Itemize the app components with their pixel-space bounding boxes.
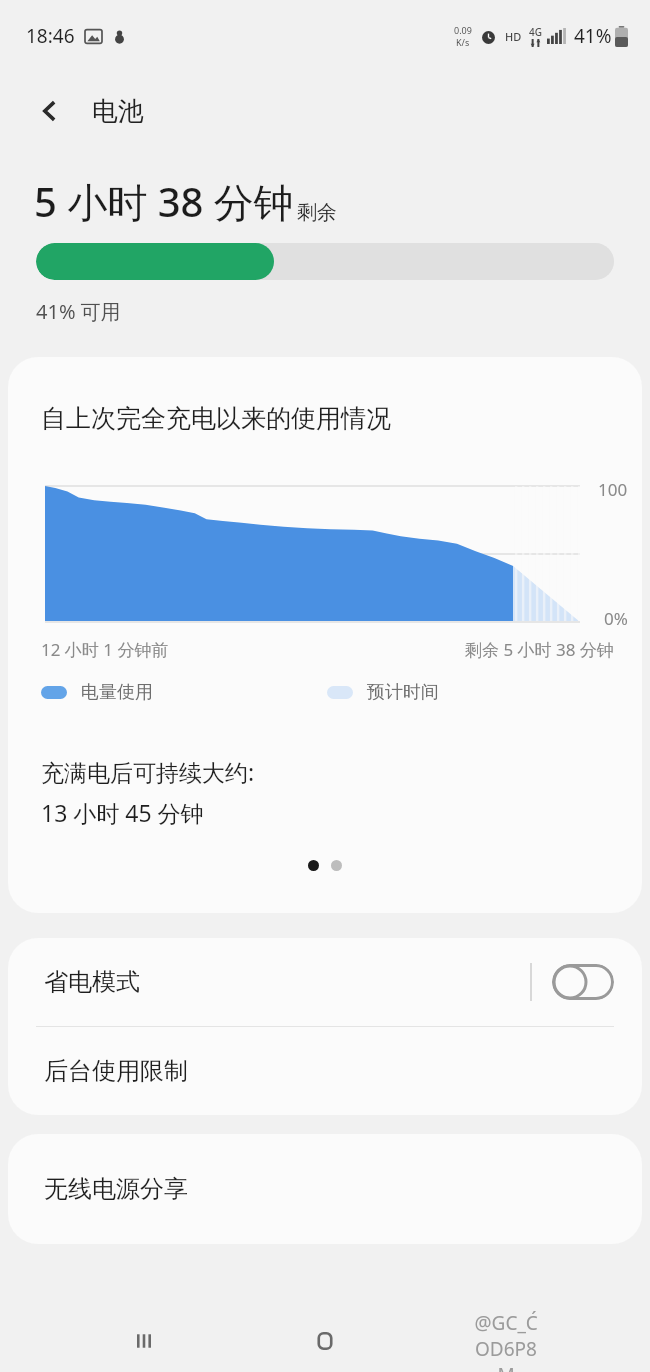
staticText: 5 小时 38 分钟 <box>34 174 294 229</box>
staticText: 41% 可用 <box>36 298 121 325</box>
button[interactable]: Back <box>26 87 74 135</box>
staticText: 预计时间 <box>367 681 439 704</box>
staticText: 0% <box>604 607 628 630</box>
staticText: K/s <box>456 36 470 48</box>
button[interactable]: 后台使用限制 <box>8 1027 642 1115</box>
staticText: 省电模式 <box>44 967 530 997</box>
staticText: 自上次完全充电以来的使用情况 <box>41 403 391 434</box>
staticText: 13 小时 45 分钟 <box>41 797 204 828</box>
button[interactable]: 省电模式 toggle <box>552 964 614 1000</box>
staticText: 充满电后可持续大约: <box>41 756 255 787</box>
button[interactable]: 无线电源分享 <box>8 1134 642 1244</box>
staticText: 电量使用 <box>81 681 153 704</box>
button[interactable]: 省电模式 <box>8 938 642 1026</box>
staticText: 无线电源分享 <box>44 1174 188 1204</box>
button[interactable]: Recents <box>109 1310 181 1372</box>
staticText: @GC_ĆOD6P8M <box>470 1310 542 1372</box>
staticText: 电池 <box>92 95 144 128</box>
staticText: 后台使用限制 <box>44 1056 188 1086</box>
staticText: 41% <box>574 23 612 49</box>
button[interactable]: 自上次完全充电以来的使用情况 <box>8 357 642 913</box>
button[interactable]: Back <box>470 1310 542 1372</box>
staticText: 4G <box>529 25 542 39</box>
staticText: 12 小时 1 分钟前 <box>41 638 169 661</box>
staticText: 剩余 5 小时 38 分钟 <box>465 638 614 661</box>
staticText: 100 <box>598 478 628 501</box>
staticText: 18:46 <box>26 23 75 49</box>
staticText: 0.09 <box>454 24 472 36</box>
button[interactable]: Home <box>289 1310 361 1372</box>
staticText: 剩余 <box>297 200 337 225</box>
staticText: HD <box>505 29 522 44</box>
